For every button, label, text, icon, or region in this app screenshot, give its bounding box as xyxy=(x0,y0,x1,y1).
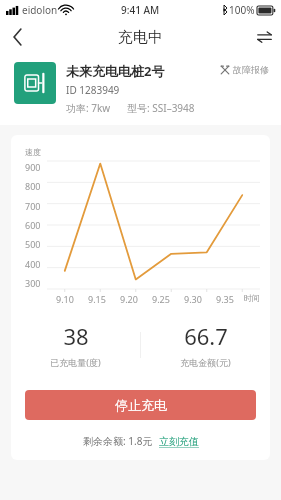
staticText: 型号: SSI–3948 xyxy=(127,101,195,115)
button[interactable]: Switch charging mode xyxy=(247,20,281,54)
button[interactable]: 故障报修 xyxy=(220,64,269,75)
staticText: 速度 xyxy=(25,147,41,157)
staticText: 9.25 xyxy=(152,293,170,305)
staticText: 剩余余额: 1.8元 xyxy=(83,434,153,448)
staticText: 66.7 xyxy=(184,321,228,351)
staticText: eidolon xyxy=(22,3,58,17)
staticText: 9.10 xyxy=(56,293,74,305)
staticText: 9.30 xyxy=(184,293,202,305)
staticText: 300 xyxy=(25,277,41,289)
staticText: 9.35 xyxy=(216,293,234,305)
staticText: 9.20 xyxy=(120,293,138,305)
staticText: 停止充电 xyxy=(115,397,167,413)
staticText: 未来充电电桩2号 xyxy=(66,62,165,80)
staticText: 故障报修 xyxy=(233,64,269,75)
staticText: 时间 xyxy=(244,293,260,303)
staticText: 700 xyxy=(25,200,41,212)
staticText: ID 1283949 xyxy=(66,83,120,97)
staticText: 已充电量(度) xyxy=(50,356,101,368)
button[interactable]: 立刻充值 xyxy=(159,435,199,448)
staticText: 9:41 AM xyxy=(121,3,160,17)
staticText: 充电金额(元) xyxy=(180,356,231,368)
staticText: 900 xyxy=(25,161,41,173)
staticText: 100% xyxy=(229,3,255,17)
staticText: 充电中 xyxy=(118,28,163,47)
staticText: 400 xyxy=(25,258,41,270)
staticText: 9.15 xyxy=(88,293,106,305)
staticText: 600 xyxy=(25,219,41,231)
staticText: 功率: 7kw xyxy=(66,101,111,115)
staticText: 500 xyxy=(25,238,41,250)
staticText: 立刻充值 xyxy=(159,435,199,448)
button[interactable]: Back xyxy=(0,20,34,54)
button[interactable]: 停止充电 xyxy=(25,390,256,420)
staticText: 38 xyxy=(63,321,89,351)
staticText: 800 xyxy=(25,180,41,192)
button[interactable]: 未来充电电桩2号 xyxy=(0,54,281,125)
